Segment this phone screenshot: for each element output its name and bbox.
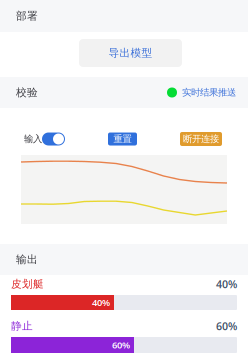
staticText: 重置 (113, 133, 131, 145)
staticText: 校验 (16, 86, 38, 99)
staticText: 皮划艇 (11, 277, 44, 290)
staticText: 40% (216, 277, 237, 291)
button[interactable]: 重置 (108, 132, 137, 145)
button[interactable]: 断开连接 (180, 132, 222, 146)
staticText: 40% (92, 296, 110, 309)
staticText: 导出模型 (108, 46, 152, 59)
staticText: 实时结果推送 (182, 87, 236, 98)
staticText: 输入 (24, 133, 42, 145)
staticText: 60% (112, 339, 130, 351)
staticText: 输出 (16, 253, 38, 266)
button[interactable]: 导出模型 (79, 39, 182, 67)
staticText: 60% (216, 319, 237, 333)
staticText: 断开连接 (183, 133, 219, 145)
staticText: 部署 (16, 9, 38, 22)
staticText: 静止 (11, 319, 33, 332)
